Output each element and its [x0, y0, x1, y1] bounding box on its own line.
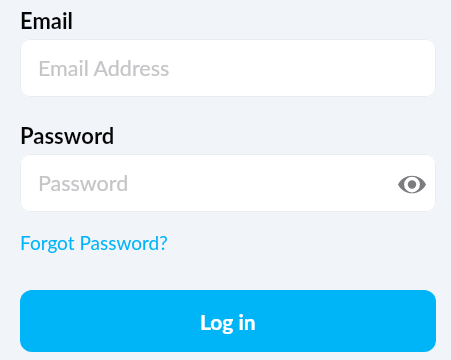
staticText: Email	[20, 7, 74, 33]
button[interactable]: Forgot Password?	[20, 231, 168, 254]
staticText: Password	[20, 122, 115, 148]
staticText: Password	[38, 170, 129, 196]
button[interactable]: Password	[20, 154, 436, 212]
staticText: Email Address	[38, 55, 170, 81]
button[interactable]: Log in	[20, 290, 436, 352]
staticText: Log in	[200, 309, 256, 334]
staticText: Forgot Password?	[20, 231, 168, 254]
button[interactable]: Email Address	[20, 39, 436, 97]
button[interactable]: Show password	[390, 162, 434, 206]
